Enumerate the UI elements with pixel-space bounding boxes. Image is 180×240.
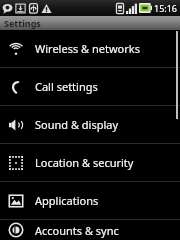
button[interactable]: Location & security — [0, 144, 180, 181]
button[interactable]: Sound & display — [0, 106, 180, 143]
staticText: Wireless & networks — [35, 41, 140, 56]
staticText: 15:16 — [154, 2, 178, 14]
button[interactable]: Applications — [0, 182, 180, 219]
button[interactable]: Accounts & sync — [0, 220, 180, 240]
button[interactable]: Call settings — [0, 68, 180, 105]
staticText: Applications — [35, 193, 99, 208]
staticText: Accounts & sync — [35, 223, 119, 238]
staticText: Call settings — [35, 79, 98, 94]
staticText: Sound & display — [35, 117, 119, 132]
staticText: Settings — [4, 17, 41, 29]
staticText: Location & security — [35, 155, 134, 170]
button[interactable]: Wireless & networks — [0, 30, 180, 67]
